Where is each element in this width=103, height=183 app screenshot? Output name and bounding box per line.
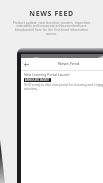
staticText: Product update, new launches, posters, i… [11,20,92,36]
staticText: New Learning Portal Launch [24,72,70,77]
staticText: NEWS FEED [0,9,103,19]
staticText: DHD ready to dive new portal for learnin… [24,83,103,91]
staticText: 9:41 [34,55,39,58]
staticText: ANNOUNCEMENT [25,78,50,82]
button[interactable]: Back [21,59,31,69]
button[interactable]: New Learning Portal Launch [21,71,103,91]
staticText: News Feed [58,61,80,67]
